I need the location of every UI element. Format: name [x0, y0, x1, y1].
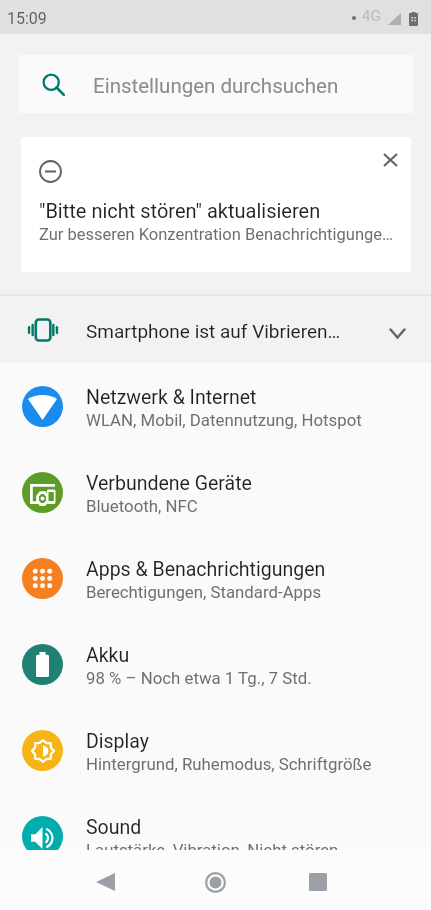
button[interactable]: Akku — [0, 621, 431, 707]
staticText: Hintergrund, Ruhemodus, Schriftgröße — [86, 754, 372, 774]
button[interactable]: Schließen — [369, 139, 411, 181]
staticText: 15:09 — [7, 9, 47, 28]
button[interactable]: Smartphone ist auf Vibrieren… — [0, 296, 431, 363]
staticText: Zur besseren Konzentration Benachrichtig… — [39, 225, 394, 244]
staticText: Einstellungen durchsuchen — [93, 74, 339, 98]
staticText: Smartphone ist auf Vibrieren… — [86, 320, 375, 342]
button[interactable]: Apps & Benachrichtigungen — [0, 535, 431, 621]
staticText: 98 % – Noch etwa 1 Tg., 7 Std. — [86, 668, 312, 688]
button[interactable]: Display — [0, 707, 431, 793]
staticText: Lautstärke, Vibration, Nicht stören — [86, 840, 339, 860]
button[interactable]: Einstellungen durchsuchen — [18, 55, 414, 113]
button[interactable]: Verbundene Geräte — [0, 449, 431, 535]
staticText: Sound — [86, 816, 142, 839]
button[interactable]: "Bitte nicht stören" aktualisieren — [21, 137, 411, 272]
staticText: Apps & Benachrichtigungen — [86, 558, 326, 581]
staticText: Netzwerk & Internet — [86, 386, 257, 409]
staticText: Display — [86, 730, 149, 753]
button[interactable]: Übersicht — [294, 858, 342, 906]
button[interactable]: Ausklappen — [375, 308, 419, 352]
staticText: Bluetooth, NFC — [86, 496, 198, 516]
staticText: Berechtigungen, Standard-Apps — [86, 582, 322, 602]
staticText: WLAN, Mobil, Datennutzung, Hotspot — [86, 410, 362, 430]
button[interactable]: Zurück — [81, 858, 129, 906]
staticText: 4G — [362, 7, 381, 25]
staticText: Akku — [86, 644, 130, 667]
button[interactable]: Startbildschirm — [191, 858, 239, 906]
staticText: Verbundene Geräte — [86, 472, 252, 495]
button[interactable]: Sound — [0, 793, 431, 879]
button[interactable]: Netzwerk & Internet — [0, 363, 431, 449]
staticText: "Bitte nicht stören" aktualisieren — [39, 199, 321, 222]
